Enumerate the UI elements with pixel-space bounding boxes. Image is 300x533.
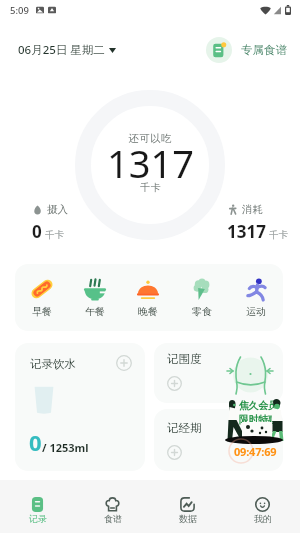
staticText: 记录 [29, 513, 47, 524]
button[interactable]: 06月25日 星期二 [18, 42, 116, 58]
button[interactable]: 记录 [0, 480, 75, 533]
staticText: 我的 [254, 513, 272, 524]
staticText: 晚餐 [138, 305, 158, 318]
staticText: 1317 [227, 220, 266, 243]
button[interactable]: 专属食谱 [206, 37, 287, 63]
staticText: 千卡 [269, 229, 288, 241]
button[interactable]: 零食 [175, 264, 229, 331]
staticText: 0 [32, 220, 42, 243]
staticText: 食谱 [104, 513, 122, 524]
staticText: 消耗 [242, 203, 263, 216]
staticText: 焦久会员 [239, 399, 278, 412]
button[interactable]: 早餐 [15, 264, 68, 331]
button[interactable]: 数据 [150, 480, 225, 533]
staticText: 记围度 [167, 352, 202, 366]
staticText: 摄入 [47, 203, 68, 216]
staticText: 06月25日 星期二 [18, 42, 105, 58]
button[interactable]: 记录饮水 [15, 343, 145, 471]
button[interactable]: 午餐 [68, 264, 121, 331]
staticText: 记录饮水 [30, 357, 76, 371]
button[interactable]: Add [167, 445, 182, 460]
button[interactable]: 食谱 [75, 480, 150, 533]
staticText: 千卡 [45, 229, 64, 241]
staticText: 专属食谱 [241, 43, 287, 57]
staticText: / 1253ml [42, 440, 89, 455]
staticText: 1317 [107, 137, 194, 189]
button[interactable]: Add [116, 355, 132, 371]
staticText: 早餐 [32, 305, 52, 318]
button[interactable]: Promotion [222, 399, 288, 461]
staticText: 5:09 [10, 4, 29, 17]
button[interactable]: 记经期 [154, 409, 283, 471]
button[interactable]: 晚餐 [121, 264, 175, 331]
staticText: 数据 [179, 513, 197, 524]
staticText: 零食 [192, 305, 212, 318]
staticText: 09:47:69 [234, 444, 277, 459]
staticText: 千卡 [140, 181, 161, 194]
staticText: 记经期 [167, 421, 202, 435]
staticText: 0 [29, 427, 42, 457]
button[interactable]: Add [167, 376, 182, 391]
staticText: 还可以吃 [128, 132, 172, 145]
staticText: 午餐 [85, 305, 105, 318]
staticText: 运动 [246, 305, 266, 318]
button[interactable]: 记围度 [154, 343, 283, 403]
button[interactable]: 我的 [225, 480, 300, 533]
button[interactable]: 运动 [229, 264, 283, 331]
staticText: 限时特惠 [239, 413, 278, 426]
